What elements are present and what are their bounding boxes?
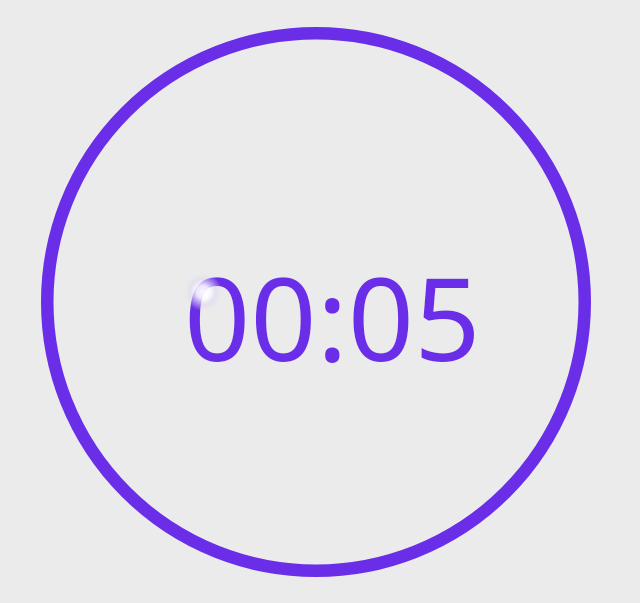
staticText: 00:05	[184, 237, 481, 395]
button[interactable]: Countdown timer 00:05, tap to pause	[0, 0, 640, 603]
